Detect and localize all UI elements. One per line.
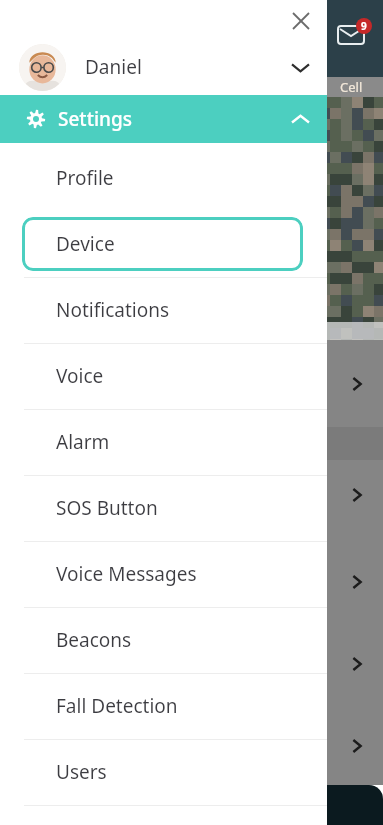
staticText: SOS Button [56,495,158,521]
button[interactable]: Notifications [0,277,327,343]
staticText: Settings [58,106,132,132]
staticText: Device [56,231,115,257]
staticText: Notifications [56,297,170,323]
staticText: Users [56,759,107,785]
staticText: Voice [56,363,104,389]
staticText: Voice Messages [56,561,197,587]
button[interactable]: Voice Messages [0,541,327,607]
staticText: Daniel [85,54,142,80]
button[interactable]: Profile [0,145,327,211]
button[interactable]: Users [0,739,327,805]
button[interactable]: Fall Detection [0,673,327,739]
button[interactable]: Open item [344,482,370,508]
button[interactable]: Open item [344,651,370,677]
button[interactable]: Open item [344,733,370,759]
button[interactable]: Beacons [0,607,327,673]
button[interactable]: Daniel [0,40,327,94]
staticText: Cell [340,78,363,96]
button[interactable]: SOS Button [0,475,327,541]
button[interactable]: Open item [344,371,370,397]
button[interactable]: Device [22,217,303,271]
staticText: 9 [361,19,367,33]
button[interactable]: Voice [0,343,327,409]
staticText: Profile [56,165,114,191]
button[interactable]: Settings [0,95,327,143]
button[interactable]: Open item [344,569,370,595]
button[interactable]: Messages [336,18,376,58]
staticText: Fall Detection [56,693,178,719]
staticText: Alarm [56,429,110,455]
staticText: Beacons [56,627,132,653]
button[interactable]: Close [286,6,316,36]
button[interactable]: Alarm [0,409,327,475]
